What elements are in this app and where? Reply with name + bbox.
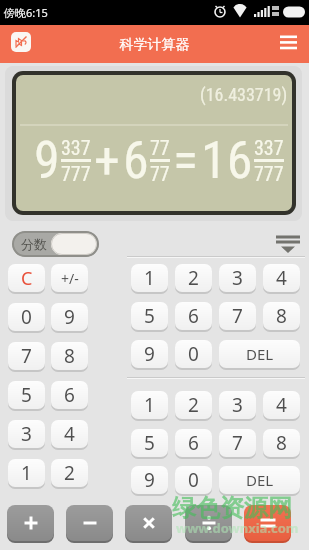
staticText: 3 (232, 265, 243, 291)
button[interactable] (66, 505, 113, 541)
button[interactable] (274, 30, 302, 58)
button[interactable]: 8 (263, 302, 300, 330)
staticText: 分数 (21, 236, 47, 252)
staticText: 9 (144, 467, 155, 493)
button[interactable]: 9 (131, 466, 168, 494)
button[interactable]: 6 (175, 302, 212, 330)
staticText: 5 (144, 430, 155, 456)
button[interactable]: 5 (131, 302, 168, 330)
staticText: 7 (21, 343, 32, 369)
button[interactable]: 0 (8, 303, 45, 331)
staticText: 777 (61, 162, 91, 185)
button[interactable]: 3 (8, 420, 45, 448)
button[interactable]: 3 (219, 391, 256, 419)
staticText: +/- (61, 269, 79, 288)
staticText: 0 (188, 341, 199, 367)
staticText: 7 (232, 430, 243, 456)
button[interactable] (11, 32, 31, 52)
staticText: 777 (254, 162, 284, 185)
button[interactable]: 1 (131, 264, 168, 292)
button[interactable]: DEL (219, 466, 300, 494)
button[interactable]: 9 (131, 340, 168, 368)
staticText: 6 (188, 303, 199, 329)
staticText: 1 (144, 392, 155, 418)
staticText: 2 (188, 392, 199, 418)
staticText: 6 (188, 430, 199, 456)
button[interactable]: 2 (51, 459, 88, 487)
button[interactable]: +/- (51, 264, 88, 292)
staticText: 4 (64, 421, 75, 447)
staticText: 4 (276, 392, 287, 418)
staticText: 8 (276, 303, 287, 329)
button[interactable] (125, 505, 172, 541)
button[interactable]: 6 (175, 429, 212, 457)
staticText: 4 (276, 265, 287, 291)
staticText: 77 (150, 162, 170, 185)
button[interactable]: 4 (51, 420, 88, 448)
staticText: 2 (188, 265, 199, 291)
staticText: = (173, 130, 198, 191)
button[interactable]: 7 (219, 429, 256, 457)
staticText: www.downxia.com (176, 519, 299, 537)
staticText: 0 (21, 304, 32, 330)
button[interactable]: 7 (219, 302, 256, 330)
button[interactable] (7, 505, 54, 541)
staticText: 77 (150, 136, 170, 159)
button[interactable]: 2 (175, 264, 212, 292)
button[interactable]: 0 (175, 340, 212, 368)
staticText: DEL (246, 344, 274, 364)
staticText: 9 (144, 341, 155, 367)
staticText: 337 (254, 136, 284, 159)
staticText: DEL (246, 470, 274, 490)
button[interactable]: 5 (131, 429, 168, 457)
staticText: 9 (64, 304, 75, 330)
button[interactable]: 8 (263, 429, 300, 457)
button[interactable]: 5 (8, 381, 45, 409)
button[interactable]: 9 (51, 303, 88, 331)
button[interactable]: 3 (219, 264, 256, 292)
staticText: 5 (21, 382, 32, 408)
staticText: 16 (201, 130, 253, 191)
button[interactable]: 4 (263, 264, 300, 292)
staticText: 1 (144, 265, 155, 291)
staticText: 1 (21, 460, 32, 486)
staticText: 6 (64, 382, 75, 408)
button[interactable]: 4 (263, 391, 300, 419)
staticText: C (21, 266, 33, 291)
button[interactable]: 1 (131, 391, 168, 419)
staticText: 6 (123, 130, 149, 191)
button[interactable]: 7 (8, 342, 45, 370)
staticText: 9 (34, 130, 60, 191)
staticText: 5 (144, 303, 155, 329)
staticText: 3 (21, 421, 32, 447)
staticText: + (94, 130, 120, 191)
staticText: 2 (64, 460, 75, 486)
button[interactable]: DEL (219, 340, 300, 368)
staticText: (16.433719) (200, 84, 288, 105)
staticText: 8 (276, 430, 287, 456)
staticText: 0 (188, 467, 199, 493)
staticText: 7 (232, 303, 243, 329)
staticText: 傍晚6:15 (4, 5, 48, 20)
button[interactable] (185, 505, 232, 541)
button[interactable]: 8 (51, 342, 88, 370)
staticText: 绿色资源网 (172, 493, 292, 523)
staticText: 8 (64, 343, 75, 369)
button[interactable]: 1 (8, 459, 45, 487)
button[interactable] (244, 505, 291, 541)
button[interactable]: 2 (175, 391, 212, 419)
staticText: 科学计算器 (0, 36, 309, 54)
button[interactable]: 0 (175, 466, 212, 494)
staticText: 3 (232, 392, 243, 418)
button[interactable] (272, 231, 304, 257)
button[interactable]: C (8, 264, 45, 292)
staticText: 337 (61, 136, 91, 159)
button[interactable]: 分数 (12, 231, 99, 257)
button[interactable]: 6 (51, 381, 88, 409)
